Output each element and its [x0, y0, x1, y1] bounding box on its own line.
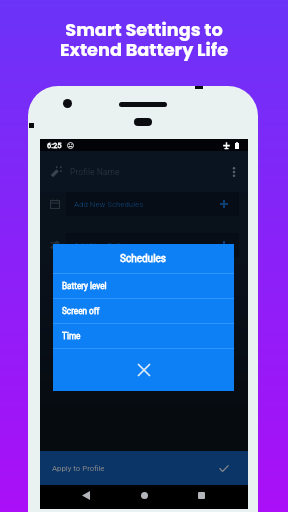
- button[interactable]: Add New Schedules: [40, 192, 248, 216]
- staticText: Add New Schedules: [74, 200, 144, 209]
- button[interactable]: Add New Settings: [40, 233, 248, 257]
- staticText: Smart Settings to Extend Battery Life: [0, 17, 288, 62]
- staticText: Apply to Profile: [52, 464, 105, 473]
- button[interactable]: Back: [76, 485, 96, 505]
- button[interactable]: More options: [224, 162, 244, 182]
- staticText: Profile Name: [70, 167, 120, 177]
- button[interactable]: Recent apps: [191, 485, 211, 505]
- button[interactable]: Battery level: [53, 274, 234, 298]
- button[interactable]: Time: [53, 324, 234, 348]
- staticText: Add New Settings: [74, 241, 136, 250]
- staticText: Schedules: [120, 253, 167, 265]
- other: Magic wand: [51, 166, 62, 177]
- button[interactable]: Home: [134, 485, 154, 505]
- button[interactable]: Screen off: [53, 299, 234, 323]
- staticText: Screen off: [62, 306, 100, 316]
- staticText: 6:25: [47, 141, 62, 150]
- button[interactable]: Close: [53, 349, 234, 391]
- button[interactable]: Apply to Profile: [40, 451, 248, 485]
- staticText: Time: [62, 331, 81, 341]
- staticText: Battery level: [62, 281, 107, 291]
- other: Confirm: [219, 465, 229, 472]
- button[interactable]: Magic wand: [40, 151, 248, 192]
